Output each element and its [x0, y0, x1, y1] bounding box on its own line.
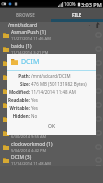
staticText: bluetooth (0)	[11, 57, 42, 64]
button[interactable]: Select AsmanPush (1)	[93, 28, 103, 42]
staticText: Readable:	[7, 97, 30, 103]
staticText: clockworkmod (1)	[11, 141, 53, 148]
button[interactable]: burstly (2)	[0, 84, 103, 98]
staticText: DCIM	[21, 57, 40, 67]
button[interactable]: Select baidu (1)	[93, 42, 103, 56]
staticText: /mnt/sdcard/DCIM	[31, 73, 71, 79]
button[interactable]: bluetooth (0)	[0, 56, 103, 70]
staticText: Size:	[7, 81, 30, 87]
button[interactable]: Select CallRecord (4)	[93, 112, 103, 126]
button[interactable]: Select bugtogo (0)	[93, 70, 103, 84]
staticText: bugtogo (0)	[11, 71, 39, 78]
button[interactable]: FILE	[51, 8, 103, 22]
button[interactable]: Paste	[93, 22, 102, 28]
button[interactable]: BROWSE	[0, 8, 51, 22]
staticText: 11/27/2014 11:46 AM	[11, 36, 51, 41]
staticText: Yes	[31, 105, 39, 111]
button[interactable]: Select camera_cache (0)	[93, 126, 103, 140]
staticText: DCIM (3)	[11, 154, 32, 161]
button[interactable]: AsmanPush (1)	[0, 28, 103, 42]
button[interactable]: clockworkmod (1)	[0, 140, 103, 154]
button[interactable]: Select bluetooth (0)	[93, 56, 103, 70]
button[interactable]: CallRecord (4)	[0, 112, 103, 126]
staticText: 6/30/2014 9:55 AM	[11, 134, 47, 139]
staticText: Yes	[31, 97, 39, 103]
staticText: No	[31, 113, 38, 119]
staticText: 11/14/2014 11:48 AM	[11, 161, 51, 166]
button[interactable]: OK	[36, 121, 68, 132]
button[interactable]: camera_cache (0)	[0, 126, 103, 140]
staticText: camera_cache (0)	[11, 127, 52, 134]
staticText: Path:	[7, 73, 30, 79]
staticText: Modified:	[7, 89, 30, 95]
button[interactable]: Select DCIM (3)	[93, 154, 103, 166]
staticText: 3:03 PM	[81, 1, 102, 8]
staticText: Writable:	[7, 105, 30, 111]
button[interactable]: baidu (1)	[0, 42, 103, 56]
button[interactable]: Select cache (2)	[93, 98, 103, 112]
staticText: 100%	[64, 1, 76, 7]
button[interactable]: DCIM (3)	[0, 154, 103, 166]
button[interactable]: bugtogo (0)	[0, 70, 103, 84]
button[interactable]: Select burstly (2)	[93, 84, 103, 98]
staticText: /mnt/sdcard	[8, 22, 38, 28]
staticText: cache (2)	[11, 99, 32, 106]
staticText: Hidden:	[7, 113, 30, 119]
staticText: 476 MB (501131982 Bytes)	[31, 81, 87, 87]
staticText: BROWSE	[16, 12, 35, 18]
staticText: 11/14/2014 11:48 AM	[31, 89, 76, 95]
staticText: AsmanPush (1)	[11, 29, 46, 36]
staticText: 11/14/2014 3:21 PM	[11, 50, 49, 55]
staticText: 10/02/2014 9:10 AM	[11, 64, 49, 69]
button[interactable]: Select clockworkmod (1)	[93, 140, 103, 154]
staticText: 5/04/2014 4:42 PM	[11, 148, 47, 153]
staticText: baidu (1)	[11, 43, 32, 50]
staticText: OK	[48, 123, 56, 130]
staticText: 10/14/2014 7:02 PM	[11, 78, 49, 83]
staticText: CallRecord (4)	[11, 113, 44, 120]
staticText: 8/19/2014 5:34 PM	[11, 92, 47, 97]
staticText: burstly (2)	[11, 85, 35, 92]
button[interactable]: cache (2)	[0, 98, 103, 112]
staticText: FILE	[72, 12, 82, 18]
staticText: 9/01/2014 8:00 AM	[11, 106, 47, 111]
